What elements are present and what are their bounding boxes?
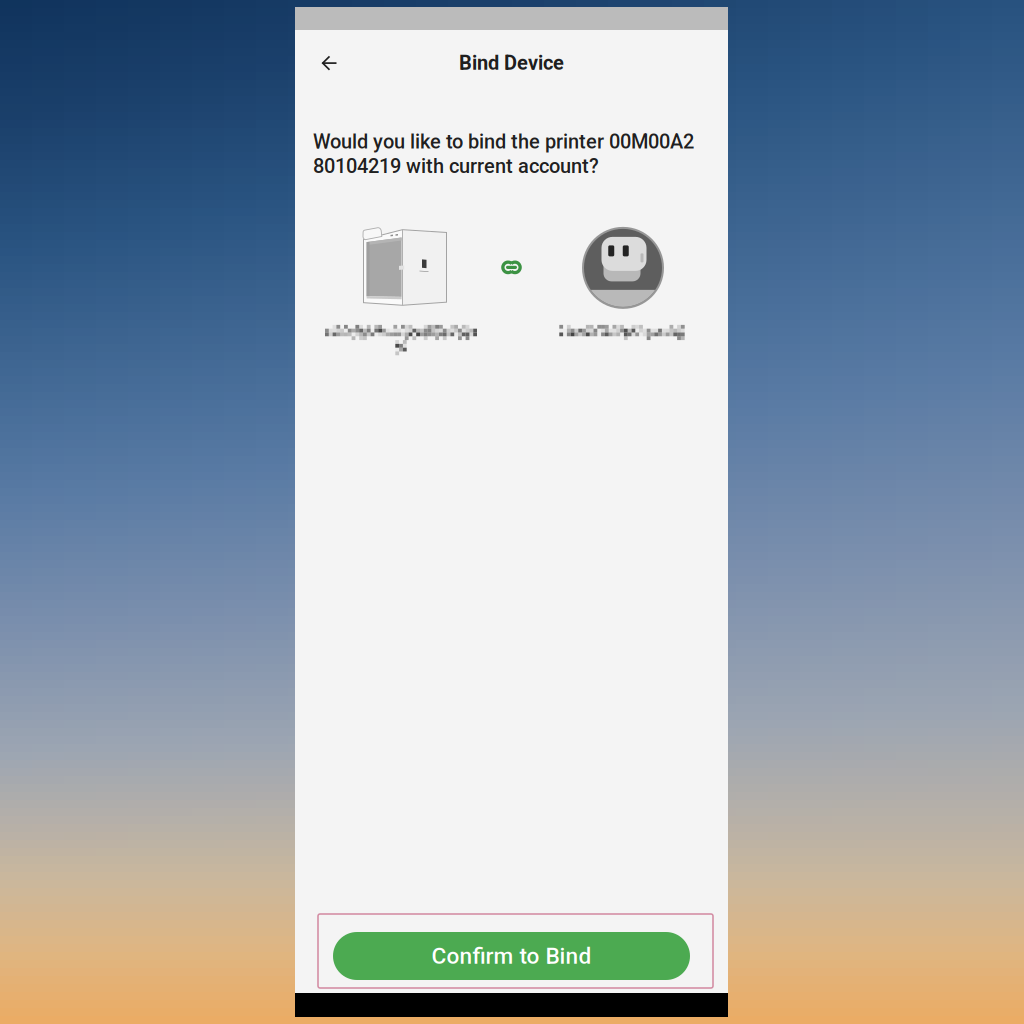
staticText: Would you like to bind the printer 00M00… [313, 130, 694, 178]
button[interactable]: Confirm to Bind [333, 932, 690, 980]
staticText: Confirm to Bind [431, 943, 591, 969]
button[interactable]: Back [307, 41, 351, 85]
staticText: Bind Device [459, 51, 564, 75]
